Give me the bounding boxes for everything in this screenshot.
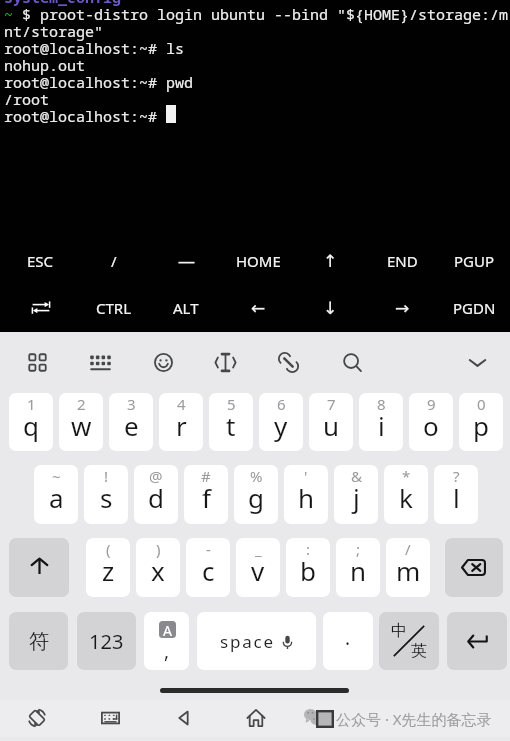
button[interactable]: -	[186, 538, 230, 597]
staticText: space	[220, 630, 275, 653]
staticText: h	[298, 480, 315, 515]
button[interactable]: 1	[9, 393, 53, 451]
button[interactable]: :	[286, 538, 330, 597]
button[interactable]: Clipboard	[265, 339, 311, 385]
staticText: r	[176, 408, 187, 443]
button[interactable]: ;	[336, 538, 380, 597]
button[interactable]: END	[366, 237, 438, 284]
button[interactable]: 5	[209, 393, 253, 451]
button[interactable]: —	[150, 237, 222, 284]
staticText: y	[274, 408, 288, 443]
staticText: PGUP	[454, 251, 495, 271]
staticText: PGDN	[453, 298, 496, 318]
staticText: ,	[164, 638, 170, 664]
staticText: )	[156, 539, 161, 559]
button[interactable]: (	[86, 538, 130, 597]
staticText: A	[163, 621, 172, 638]
button[interactable]: Enter	[447, 612, 507, 670]
button[interactable]: '	[284, 465, 328, 524]
button[interactable]: Keyboard layout	[77, 339, 123, 385]
staticText: ~	[52, 466, 61, 486]
other: Enter	[467, 635, 488, 648]
staticText: ←	[251, 298, 266, 318]
button[interactable]: ~	[34, 465, 78, 524]
button[interactable]: 7	[309, 393, 353, 451]
staticText: END	[387, 251, 418, 271]
button[interactable]: PGDN	[438, 284, 510, 331]
button[interactable]: Rotate screen	[19, 700, 55, 736]
button[interactable]: Text cursor	[202, 339, 248, 385]
button[interactable]: /	[386, 538, 430, 597]
button[interactable]: 符	[9, 612, 68, 670]
staticText: ESC	[27, 251, 54, 271]
button[interactable]: Switch keyboard	[92, 700, 128, 736]
button[interactable]: _	[236, 538, 280, 597]
staticText: &	[351, 466, 362, 486]
button[interactable]: ALT	[150, 284, 222, 331]
button[interactable]: 4	[159, 393, 203, 451]
button[interactable]: ESC	[4, 237, 77, 284]
button[interactable]: )	[136, 538, 180, 597]
button[interactable]: Arrow key	[366, 284, 438, 331]
button[interactable]: HOME	[222, 237, 294, 284]
button[interactable]: Back	[165, 700, 201, 736]
button[interactable]: Shift	[9, 538, 69, 597]
staticText: 6	[277, 394, 286, 414]
staticText: 0	[477, 394, 486, 414]
button[interactable]: %	[234, 465, 278, 524]
button[interactable]: Home	[238, 700, 274, 736]
button[interactable]: /	[77, 237, 150, 284]
button[interactable]: #	[184, 465, 228, 524]
button[interactable]: 3	[109, 393, 153, 451]
button[interactable]: 6	[259, 393, 303, 451]
button[interactable]: Arrow key	[294, 284, 366, 331]
staticText: →	[395, 298, 410, 318]
button[interactable]: 8	[359, 393, 403, 451]
staticText: 123	[89, 628, 124, 655]
staticText: a	[49, 480, 64, 515]
button[interactable]: Backspace	[445, 538, 503, 597]
button[interactable]: Tab	[4, 284, 77, 331]
button[interactable]: Hide keyboard	[454, 339, 500, 385]
button[interactable]: !	[84, 465, 128, 524]
button[interactable]: *	[384, 465, 428, 524]
button[interactable]: &	[334, 465, 378, 524]
staticText: 符	[29, 629, 49, 654]
button[interactable]: Switch language	[379, 612, 439, 670]
staticText: 2	[77, 394, 86, 414]
button[interactable]: Arrow key	[222, 284, 294, 331]
staticText: HOME	[236, 251, 281, 271]
other: Switch language	[386, 618, 432, 664]
staticText: o	[423, 408, 439, 443]
staticText: j	[353, 480, 360, 515]
button[interactable]: space	[197, 612, 316, 670]
staticText: s	[100, 480, 113, 515]
staticText: (	[106, 539, 111, 559]
button[interactable]: 9	[409, 393, 453, 451]
button[interactable]: Arrow key	[294, 237, 366, 284]
button[interactable]: A	[144, 612, 189, 670]
staticText: k	[399, 480, 413, 515]
button[interactable]: PGUP	[438, 237, 510, 284]
staticText: f	[202, 480, 211, 515]
staticText: 3	[127, 394, 136, 414]
button[interactable]: ?	[434, 465, 478, 524]
staticText: n	[350, 553, 367, 588]
button[interactable]: 0	[459, 393, 503, 451]
button[interactable]: Apps	[14, 339, 60, 385]
button[interactable]: 123	[77, 612, 136, 670]
staticText: ↑	[323, 251, 338, 271]
staticText: g	[248, 480, 264, 515]
button[interactable]: .	[323, 612, 373, 670]
staticText: :	[306, 539, 311, 559]
staticText: l	[453, 480, 460, 515]
button[interactable]: @	[134, 465, 178, 524]
button[interactable]: Emoji	[140, 339, 186, 385]
button[interactable]: 2	[59, 393, 103, 451]
staticText: 8	[377, 394, 386, 414]
staticText: system_config ~ $ proot-distro login ubu…	[4, 0, 510, 126]
button[interactable]: Search	[328, 339, 374, 385]
button[interactable]: CTRL	[77, 284, 150, 331]
staticText: ?	[453, 466, 460, 486]
staticText: CTRL	[96, 298, 132, 318]
